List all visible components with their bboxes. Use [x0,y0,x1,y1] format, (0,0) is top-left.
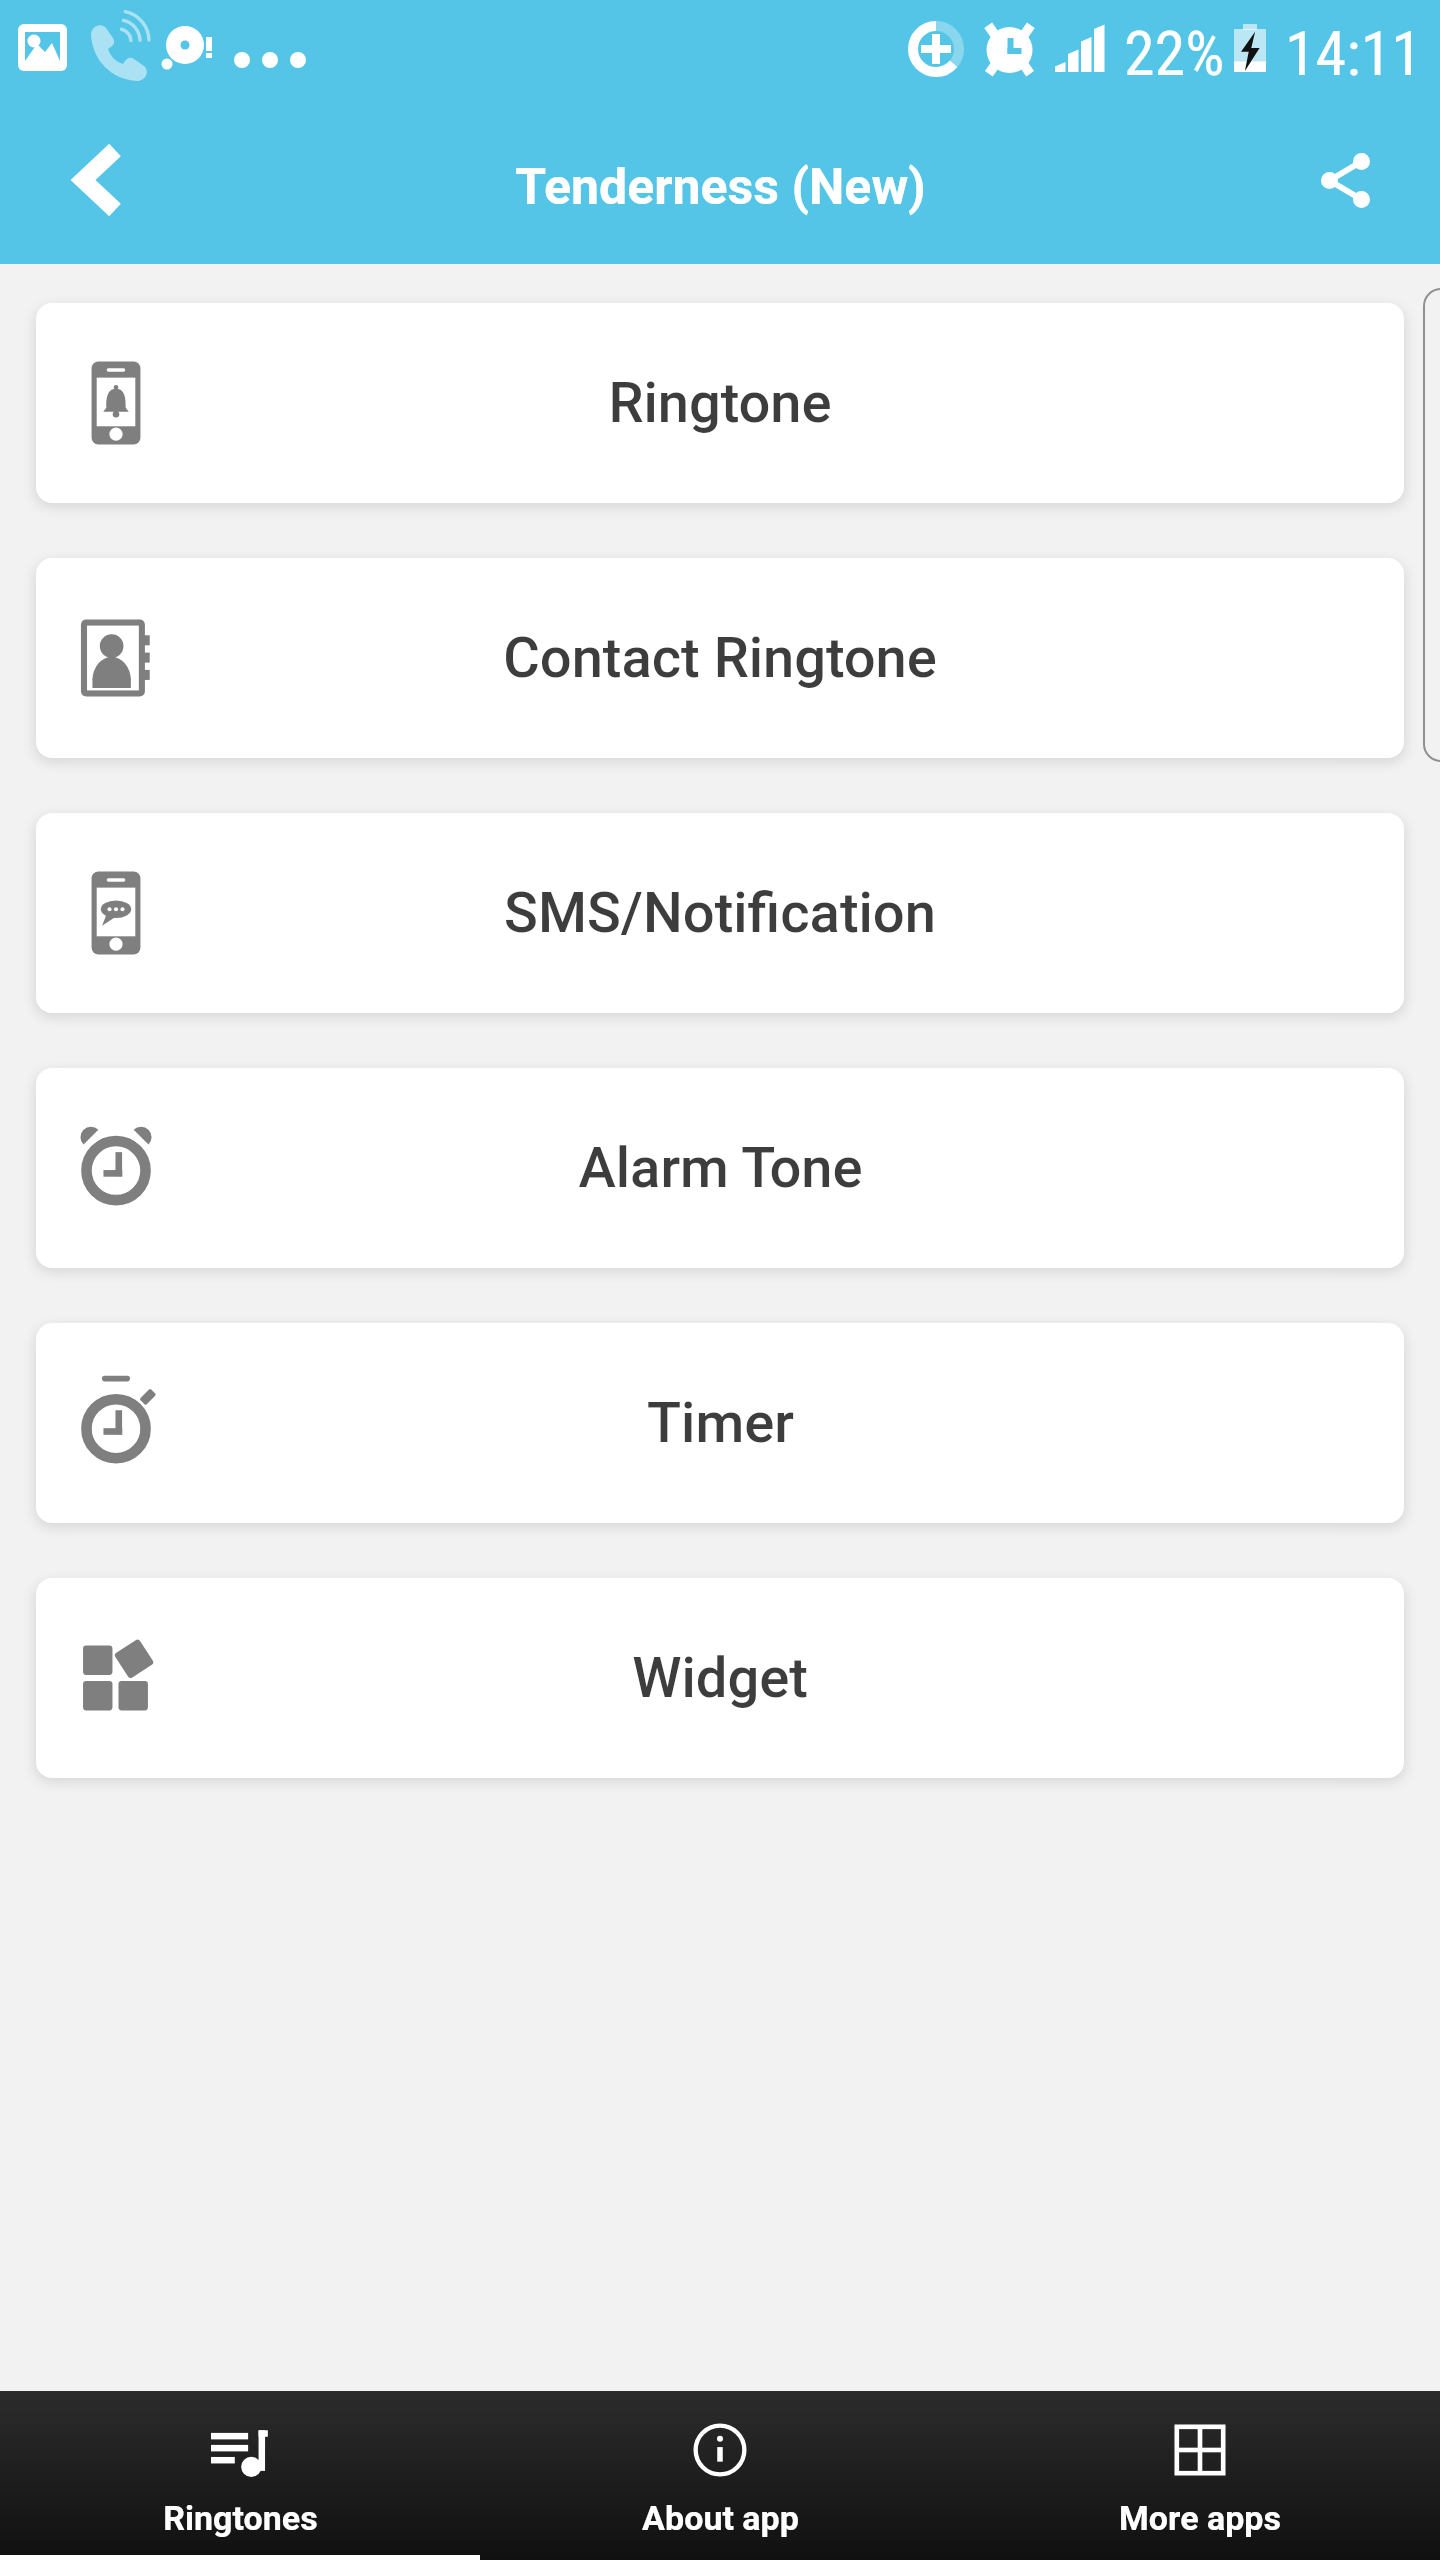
button[interactable]: Share [1278,103,1412,257]
staticText: Widget [632,1645,808,1711]
button[interactable]: Back [32,103,166,257]
staticText: Timer [647,1390,794,1456]
button[interactable]: Timer [36,1323,1404,1523]
staticText: Contact Ringtone [503,625,937,691]
staticText: About app [642,2498,799,2538]
button[interactable]: About app [480,2391,960,2560]
staticText: SMS/Notification [504,880,936,946]
button[interactable]: Widget [36,1578,1404,1778]
staticText: Ringtone [608,370,832,436]
button[interactable]: SMS/Notification [36,813,1404,1013]
staticText: 22% [1124,17,1225,90]
staticText: Tenderness (New) [515,158,926,217]
button[interactable]: More apps [960,2391,1440,2560]
button[interactable]: Ringtone [36,303,1404,503]
button[interactable]: Contact Ringtone [36,558,1404,758]
staticText: 14:11 [1285,17,1422,90]
button[interactable]: Ringtones [0,2391,480,2560]
staticText: More apps [1119,2498,1281,2538]
staticText: Alarm Tone [578,1135,863,1201]
button[interactable]: Alarm Tone [36,1068,1404,1268]
staticText: Ringtones [163,2498,318,2538]
